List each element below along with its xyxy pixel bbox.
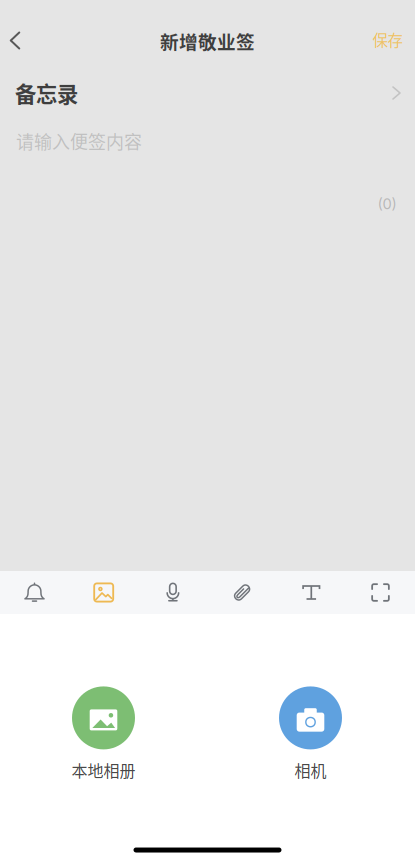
button[interactable]: Reminder: [0, 571, 69, 614]
button[interactable]: Back: [0, 18, 37, 62]
staticText: (0): [377, 195, 396, 213]
staticText: 新增敬业签: [160, 27, 255, 54]
staticText: 备忘录: [15, 78, 78, 108]
button[interactable]: Photo: [69, 571, 138, 614]
staticText: 请输入便签内容: [16, 128, 142, 154]
button[interactable]: 保存: [356, 17, 415, 61]
button[interactable]: Full screen: [346, 571, 415, 614]
button[interactable]: 本地相册: [41, 686, 165, 782]
button[interactable]: Voice: [138, 571, 207, 614]
staticText: 本地相册: [71, 758, 135, 782]
button[interactable]: Attachment: [207, 571, 277, 614]
button[interactable]: 备忘录: [0, 73, 415, 113]
button[interactable]: 相机: [248, 686, 372, 782]
staticText: 保存: [372, 28, 402, 51]
staticText: 相机: [294, 758, 326, 782]
button[interactable]: Text style: [277, 571, 346, 614]
